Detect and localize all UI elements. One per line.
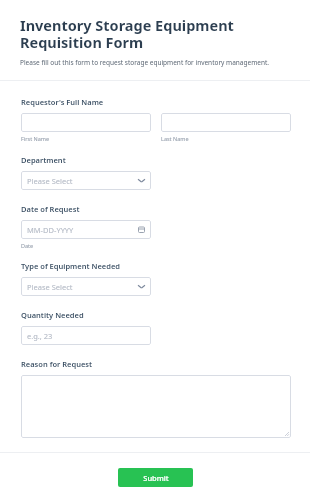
staticText: Please Select	[27, 282, 73, 292]
staticText: e.g., 23	[27, 331, 53, 341]
button[interactable]: MM-DD-YYYY	[21, 220, 151, 239]
staticText: MM-DD-YYYY	[27, 225, 74, 235]
staticText: Please fill out this form to request sto…	[20, 58, 270, 67]
staticText: First Name	[21, 135, 50, 142]
staticText: Please Select	[27, 176, 73, 186]
button[interactable]: Please Select	[21, 171, 151, 190]
staticText: Reason for Request	[21, 359, 93, 369]
button[interactable]: First Name	[21, 113, 151, 132]
staticText: Quantity Needed	[21, 310, 84, 320]
button[interactable]: Submit	[118, 468, 193, 487]
staticText: Last Name	[161, 135, 189, 142]
button[interactable]: Last Name	[161, 113, 291, 132]
button[interactable]: Reason for Request	[21, 375, 291, 438]
staticText: Date	[21, 242, 34, 249]
staticText: Requestor's Full Name	[21, 97, 104, 107]
staticText: Type of Equipment Needed	[21, 261, 120, 271]
button[interactable]: e.g., 23	[21, 326, 151, 345]
staticText: Submit	[143, 473, 169, 483]
staticText: Department	[21, 155, 66, 165]
staticText: Date of Request	[21, 204, 80, 214]
staticText: Inventory Storage Equipment Requisition …	[20, 15, 292, 52]
button[interactable]: Please Select	[21, 277, 151, 296]
